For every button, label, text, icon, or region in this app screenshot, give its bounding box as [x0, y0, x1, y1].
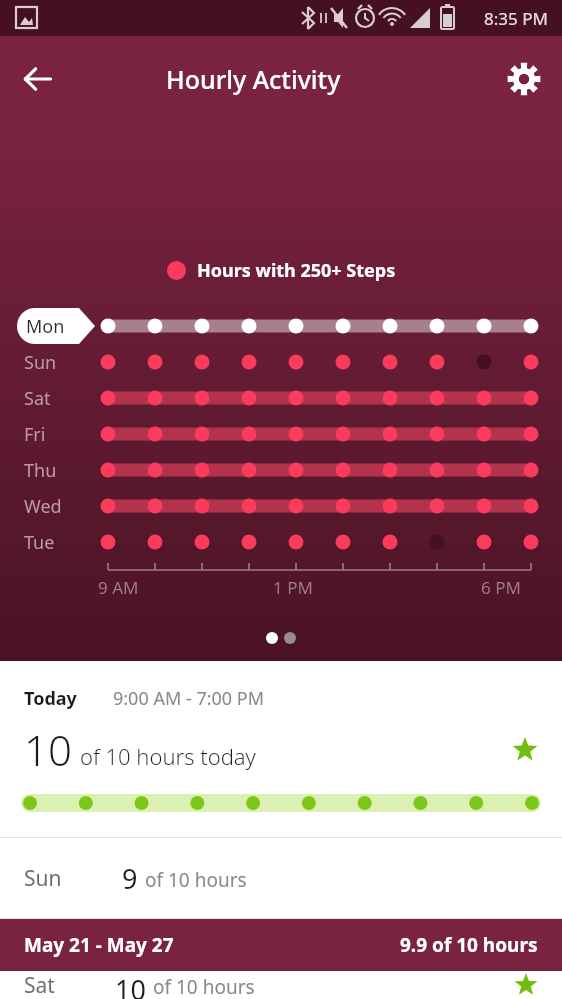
staticText: 1 PM [273, 576, 313, 599]
staticText: Hours with 250+ Steps [197, 258, 396, 283]
staticText: 10 [24, 721, 72, 778]
staticText: Sat [24, 971, 55, 999]
button[interactable]: Settings [496, 51, 552, 107]
button[interactable]: Sun [24, 838, 538, 918]
staticText: Tue [24, 530, 55, 555]
staticText: 10 [115, 971, 146, 999]
staticText: Sun [24, 864, 62, 893]
staticText: Mon [26, 314, 65, 339]
button[interactable]: Today [0, 661, 562, 837]
staticText: Thu [24, 458, 57, 483]
staticText: 9:00 AM - 7:00 PM [113, 686, 264, 711]
button[interactable]: Sat [24, 971, 538, 999]
staticText: of 10 hours [153, 974, 255, 999]
staticText: 9.9 of 10 hours [400, 932, 538, 958]
button[interactable]: Mon [17, 308, 95, 344]
button[interactable]: Back [10, 51, 66, 107]
staticText: 8:35 PM [484, 7, 548, 30]
staticText: 6 PM [481, 576, 521, 599]
staticText: 9 [122, 860, 138, 897]
staticText: 9 AM [98, 576, 139, 599]
staticText: Wed [24, 494, 62, 519]
button[interactable]: May 21 - May 27 [24, 919, 538, 971]
staticText: of 10 hours [145, 867, 247, 893]
staticText: Hourly Activity [166, 62, 341, 96]
staticText: of 10 hours today [80, 741, 256, 771]
staticText: Sat [24, 386, 51, 411]
staticText: Sun [24, 350, 57, 375]
staticText: May 21 - May 27 [24, 932, 174, 958]
staticText: Fri [24, 422, 46, 447]
staticText: Today [24, 686, 77, 711]
